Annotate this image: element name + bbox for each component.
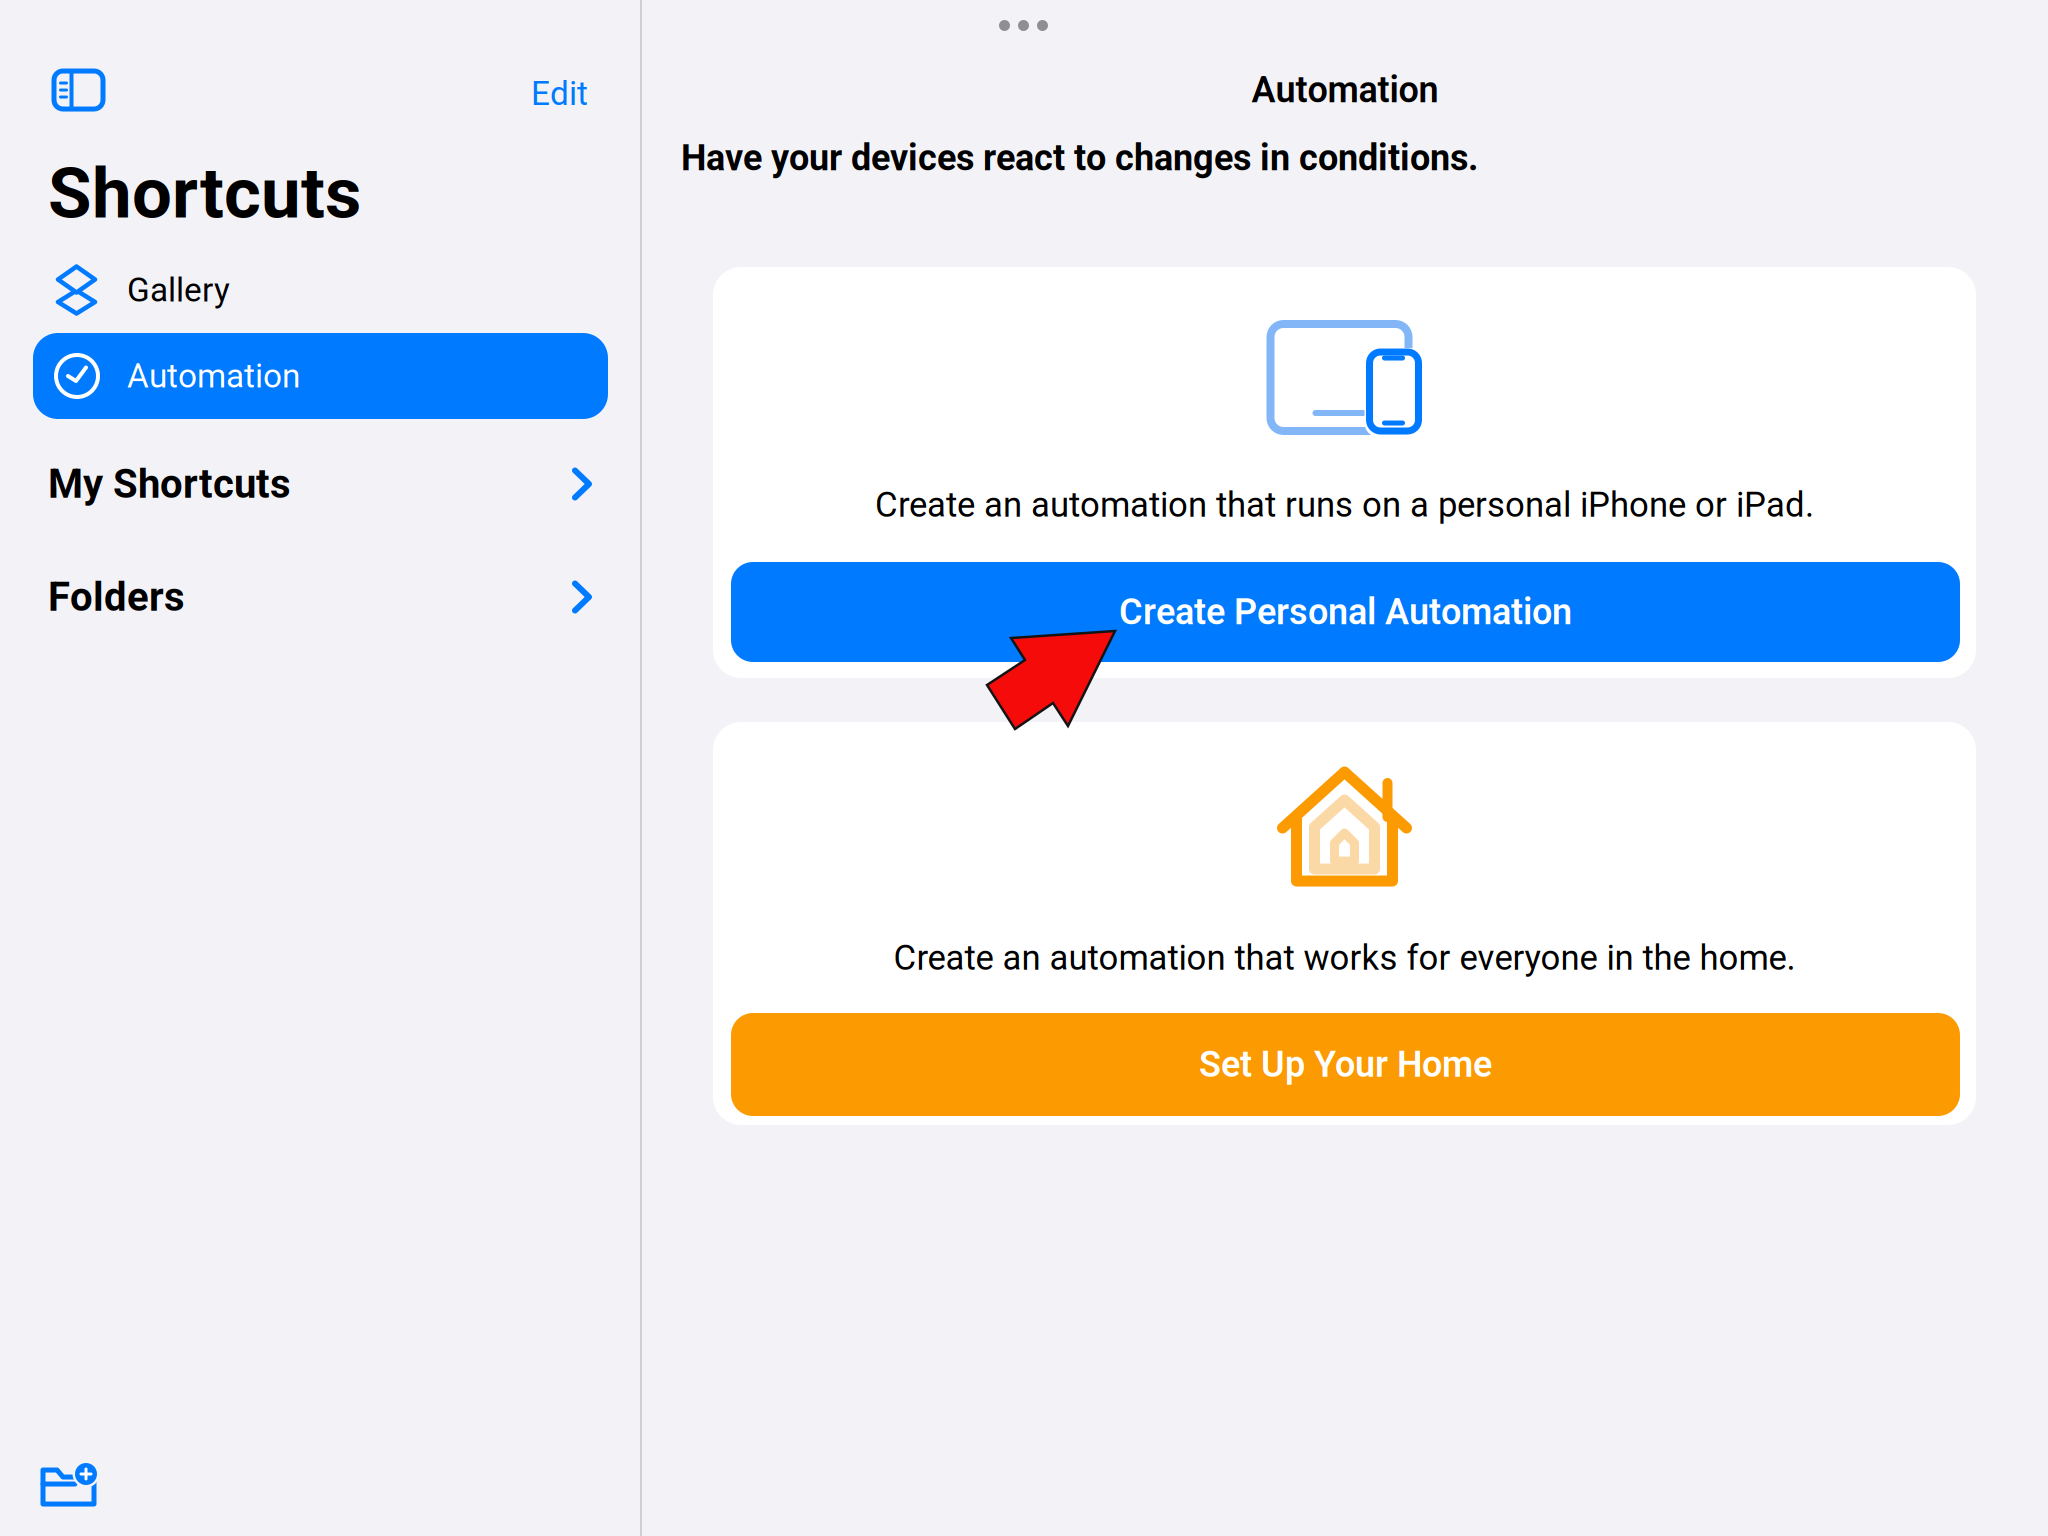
staticText: Have your devices react to changes in co… xyxy=(681,137,1478,179)
button[interactable]: Edit xyxy=(519,66,600,121)
staticText: Create Personal Automation xyxy=(1119,591,1572,633)
staticText: Edit xyxy=(531,74,588,113)
staticText: Automation xyxy=(1251,69,1438,111)
staticText: Set Up Your Home xyxy=(1199,1043,1492,1086)
staticText: Shortcuts xyxy=(48,152,361,235)
staticText: My Shortcuts xyxy=(48,461,291,507)
button[interactable]: Create Personal Automation xyxy=(731,562,1960,662)
button[interactable]: New Folder xyxy=(28,1455,109,1519)
button[interactable]: Automation xyxy=(33,333,608,419)
button[interactable]: Gallery xyxy=(33,250,608,330)
staticText: Folders xyxy=(48,574,185,620)
button[interactable]: Folders xyxy=(48,561,592,633)
staticText: Create an automation that works for ever… xyxy=(893,938,1795,978)
button[interactable]: Hide Sidebar xyxy=(44,61,113,119)
staticText: Create an automation that runs on a pers… xyxy=(875,485,1814,525)
staticText: Gallery xyxy=(127,270,230,310)
staticText: Automation xyxy=(127,356,300,396)
button[interactable]: My Shortcuts xyxy=(48,448,592,520)
button[interactable]: Set Up Your Home xyxy=(731,1013,1960,1116)
